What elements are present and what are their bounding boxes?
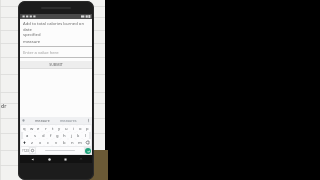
button[interactable]: c: [44, 139, 52, 146]
staticText: k: [77, 133, 80, 139]
button[interactable]: e: [35, 125, 42, 132]
staticText: b: [63, 140, 66, 146]
staticText: h: [63, 133, 66, 139]
staticText: z: [31, 140, 33, 146]
button[interactable]: j: [68, 132, 75, 139]
staticText: g: [56, 133, 59, 139]
button[interactable]: z: [28, 139, 36, 146]
button[interactable]: t: [49, 125, 56, 132]
button[interactable]: x: [36, 139, 44, 146]
staticText: r: [45, 126, 47, 132]
staticText: m: [78, 140, 82, 146]
button[interactable]: Google: [20, 117, 92, 124]
button[interactable]: ?123: [21, 147, 29, 154]
staticText: Enter a value here: [23, 50, 59, 56]
staticText: measure: [35, 118, 50, 123]
staticText: i: [73, 126, 75, 132]
button[interactable]: s: [31, 132, 39, 139]
button[interactable]: Enter: [85, 148, 91, 154]
button[interactable]: Backspace: [84, 139, 91, 146]
staticText: e: [37, 126, 40, 132]
button[interactable]: a: [23, 132, 31, 139]
button[interactable]: u: [63, 125, 70, 132]
staticText: y: [58, 126, 61, 132]
staticText: o: [79, 126, 82, 132]
button[interactable]: l: [82, 132, 89, 139]
staticText: v: [55, 140, 58, 146]
button[interactable]: Space: [36, 147, 84, 154]
staticText: measure: [23, 39, 41, 45]
staticText: dr: [1, 103, 7, 110]
staticText: c: [47, 140, 50, 146]
button[interactable]: q: [21, 125, 28, 132]
staticText: Add to total calories burned on date spe…: [23, 21, 89, 37]
button[interactable]: r: [42, 125, 49, 132]
staticText: l: [85, 133, 87, 139]
button[interactable]: b: [60, 139, 68, 146]
staticText: t: [52, 126, 54, 132]
staticText: p: [86, 126, 89, 132]
button[interactable]: Back: [27, 155, 37, 163]
button[interactable]: v: [52, 139, 60, 146]
staticText: d: [42, 133, 45, 139]
button[interactable]: h: [61, 132, 68, 139]
staticText: u: [65, 126, 68, 132]
staticText: a: [26, 133, 29, 139]
button[interactable]: Recent apps: [60, 155, 70, 163]
other: More suggestions: [87, 119, 90, 122]
button[interactable]: k: [75, 132, 82, 139]
button[interactable]: i: [70, 125, 77, 132]
staticText: j: [71, 133, 73, 139]
button[interactable]: Shift: [21, 139, 28, 146]
button[interactable]: g: [54, 132, 61, 139]
other: Google: [22, 119, 25, 122]
staticText: f: [50, 133, 52, 139]
button[interactable]: Home: [44, 155, 54, 163]
staticText: s: [34, 133, 37, 139]
button[interactable]: o: [77, 125, 84, 132]
staticText: n: [71, 140, 74, 146]
staticText: q: [23, 126, 26, 132]
button[interactable]: f: [47, 132, 54, 139]
button[interactable]: Emoji: [30, 148, 35, 153]
button[interactable]: m: [76, 139, 84, 146]
staticText: measures: [60, 118, 77, 123]
button[interactable]: p: [84, 125, 91, 132]
staticText: SUBMIT: [49, 62, 63, 67]
button[interactable]: n: [68, 139, 76, 146]
button[interactable]: w: [28, 125, 35, 132]
staticText: x: [39, 140, 42, 146]
button[interactable]: SUBMIT: [20, 61, 92, 68]
button[interactable]: y: [56, 125, 63, 132]
button[interactable]: d: [39, 132, 47, 139]
button[interactable]: Hide keyboard: [77, 155, 85, 163]
staticText: ?123: [22, 149, 29, 153]
staticText: w: [30, 126, 34, 132]
